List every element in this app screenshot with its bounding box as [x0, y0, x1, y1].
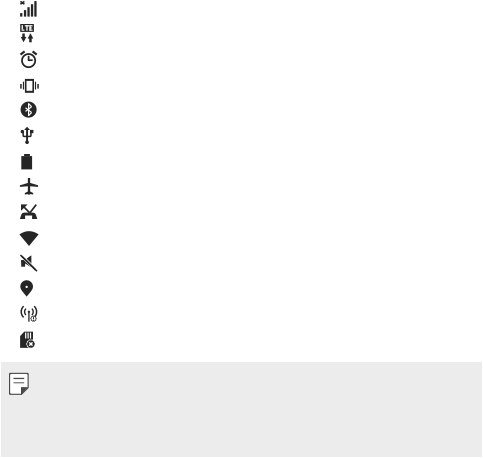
- button[interactable]: Note: [1, 362, 482, 457]
- button[interactable]: Wi-Fi connected: [18, 227, 42, 251]
- button[interactable]: USB connected: [18, 124, 42, 148]
- button[interactable]: Mobile signal, no service: [18, 0, 42, 24]
- button[interactable]: Sound muted: [18, 252, 42, 276]
- button[interactable]: LTE data transfer: [18, 22, 42, 46]
- button[interactable]: Battery full: [18, 151, 42, 175]
- button[interactable]: Missed call: [18, 202, 42, 226]
- button[interactable]: SD card removed: [18, 329, 42, 353]
- button[interactable]: Hotspot warning: [18, 303, 42, 327]
- button[interactable]: Alarm set: [18, 48, 42, 72]
- button[interactable]: Bluetooth on: [18, 99, 42, 123]
- button[interactable]: Vibrate mode: [18, 75, 42, 99]
- button[interactable]: Airplane mode: [18, 175, 42, 199]
- button[interactable]: Location in use: [18, 277, 42, 301]
